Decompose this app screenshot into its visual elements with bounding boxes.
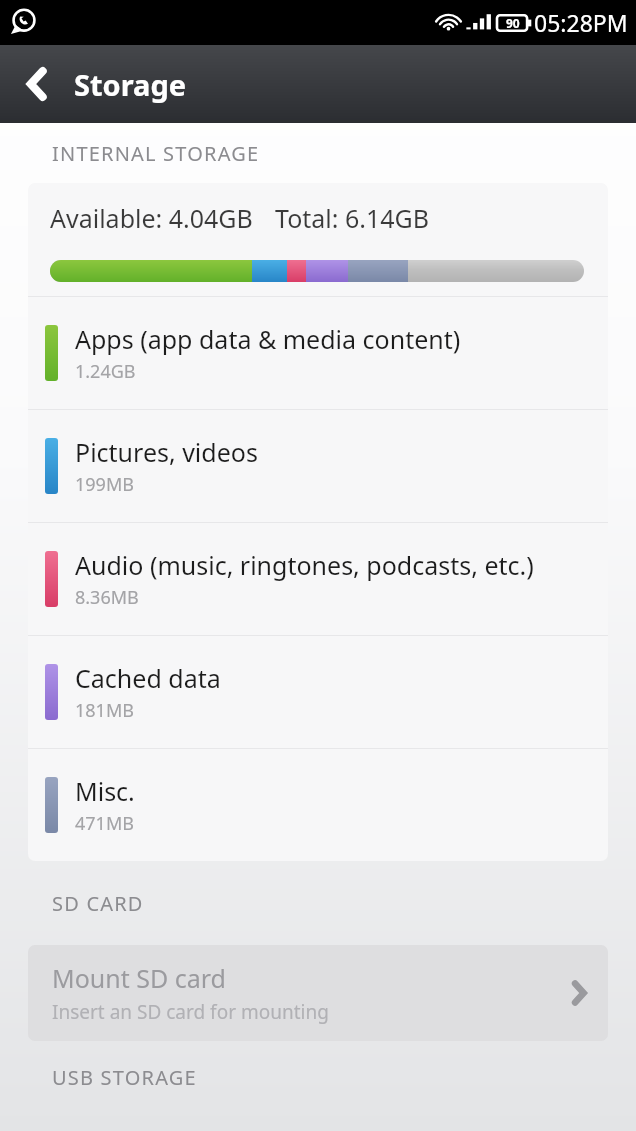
staticText: 181MB xyxy=(75,698,134,723)
staticText: 199MB xyxy=(75,472,134,497)
staticText: 471MB xyxy=(75,811,134,836)
staticText: Misc. xyxy=(75,774,135,808)
staticText: SD CARD xyxy=(52,890,144,917)
staticText: Apps (app data & media content) xyxy=(75,322,461,356)
staticText: Audio (music, ringtones, podcasts, etc.) xyxy=(75,548,534,582)
staticText: USB STORAGE xyxy=(52,1064,197,1091)
staticText: 8.36MB xyxy=(75,585,139,610)
staticText: 90 xyxy=(506,15,520,31)
staticText: Available: 4.04GB xyxy=(50,201,253,235)
staticText: Cached data xyxy=(75,661,221,695)
button[interactable]: Back xyxy=(0,45,74,123)
staticText: Pictures, videos xyxy=(75,435,258,469)
staticText: 1.24GB xyxy=(75,359,136,384)
staticText: INTERNAL STORAGE xyxy=(52,140,260,167)
button[interactable]: Cached data xyxy=(28,636,608,748)
staticText: Storage xyxy=(74,65,187,104)
button[interactable]: Apps (app data & media content) xyxy=(28,297,608,409)
button[interactable]: Pictures, videos xyxy=(28,410,608,522)
button[interactable]: Misc. xyxy=(28,749,608,861)
staticText: Total: 6.14GB xyxy=(275,201,430,235)
button[interactable]: Audio (music, ringtones, podcasts, etc.) xyxy=(28,523,608,635)
staticText: 05:28PM xyxy=(534,7,628,38)
staticText: Mount SD card xyxy=(52,961,226,995)
button[interactable]: Mount SD card xyxy=(28,945,608,1041)
staticText: Insert an SD card for mounting xyxy=(52,999,329,1025)
